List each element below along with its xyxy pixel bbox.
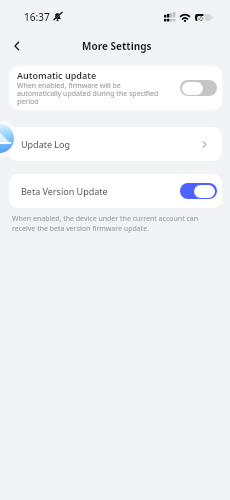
button[interactable]: Update Log — [9, 127, 222, 161]
staticText: Beta Version Update — [21, 185, 108, 197]
button[interactable]: Automatic update — [9, 66, 222, 110]
button[interactable]: Back — [6, 35, 28, 57]
other: Open update log — [200, 140, 209, 149]
staticText: Automatic update — [17, 69, 97, 81]
button[interactable]: Toggle off — [180, 80, 217, 96]
button[interactable]: Beta Version Update — [9, 174, 222, 208]
staticText: When enabled, the device under the curre… — [12, 214, 210, 234]
staticText: More Settings — [82, 39, 152, 53]
staticText: 60 — [197, 14, 206, 21]
button[interactable]: Toggle on — [180, 183, 217, 199]
staticText: When enabled, firmware will be automatic… — [17, 81, 163, 106]
staticText: 16:37 — [24, 10, 50, 24]
staticText: Update Log — [21, 138, 71, 150]
